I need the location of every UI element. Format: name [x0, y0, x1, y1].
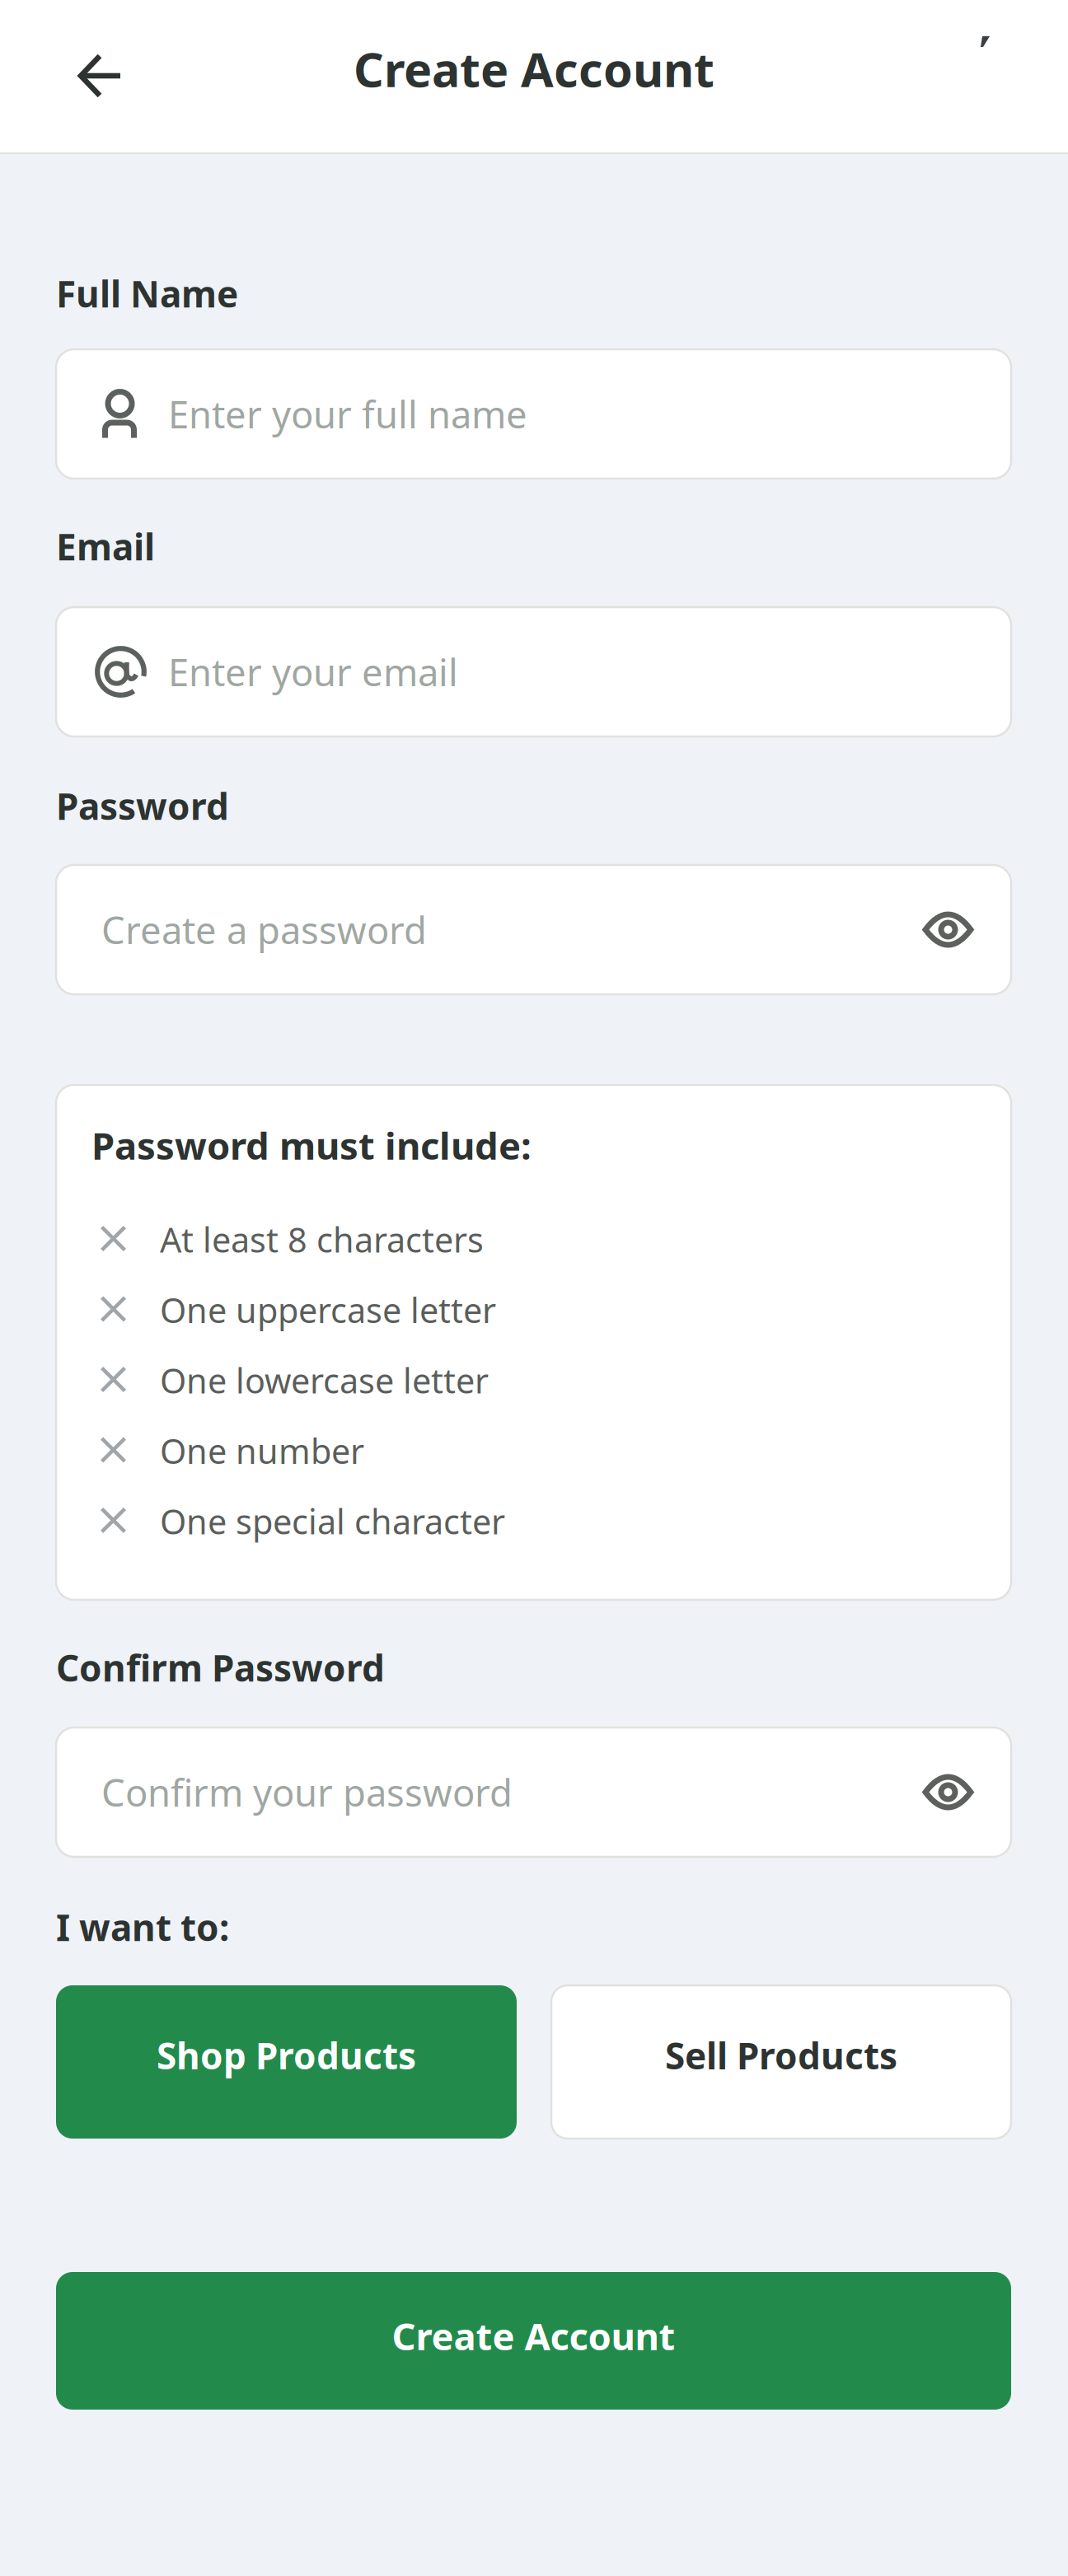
staticText: Enter your full name — [168, 389, 527, 439]
button[interactable]: Sell Products — [551, 1985, 1011, 2139]
staticText: Enter your email — [168, 647, 458, 697]
staticText: Create a password — [101, 905, 427, 954]
staticText: Password must include: — [91, 1120, 532, 1170]
staticText: Shop Products — [157, 2031, 416, 2079]
button[interactable]: Back — [52, 27, 149, 124]
button[interactable]: Password — [56, 865, 1011, 994]
staticText: At least 8 characters — [160, 1217, 484, 1262]
button[interactable]: Confirm Password — [56, 1727, 1011, 1857]
staticText: Password — [56, 782, 229, 830]
button[interactable]: Show confirm password — [922, 1773, 974, 1811]
staticText: Confirm Password — [56, 1643, 385, 1692]
staticText: One lowercase letter — [160, 1358, 489, 1403]
staticText: Create Account — [354, 37, 714, 100]
button[interactable]: Create Account — [56, 2272, 1011, 2410]
staticText: Sell Products — [665, 2031, 897, 2079]
staticText: Create Account — [392, 2311, 675, 2361]
button[interactable]: Full Name — [56, 349, 1011, 479]
staticText: I want to: — [56, 1903, 229, 1951]
staticText: Email — [56, 522, 155, 570]
staticText: One number — [160, 1428, 364, 1473]
button[interactable]: Show password — [922, 911, 974, 949]
staticText: Confirm your password — [101, 1767, 513, 1817]
button[interactable]: Email — [56, 607, 1011, 736]
staticText: Full Name — [56, 269, 238, 317]
staticText: One uppercase letter — [160, 1287, 496, 1332]
button[interactable]: Shop Products — [56, 1985, 517, 2139]
staticText: One special character — [160, 1499, 505, 1544]
